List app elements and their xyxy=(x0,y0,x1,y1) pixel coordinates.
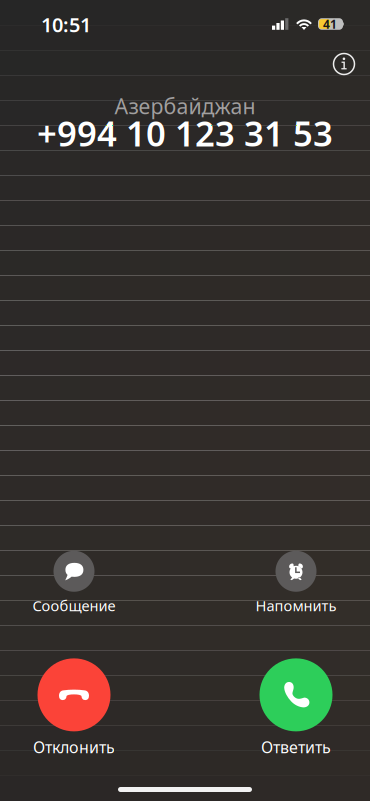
staticText: Напомнить xyxy=(255,596,336,615)
staticText: Азербайджан xyxy=(114,92,255,120)
staticText: Отклонить xyxy=(33,736,115,758)
button[interactable]: Отклонить xyxy=(0,658,148,758)
staticText: 41 xyxy=(323,16,337,32)
button[interactable]: Send message xyxy=(0,551,148,615)
staticText: Ответить xyxy=(261,736,331,758)
button[interactable]: Ответить xyxy=(222,658,370,758)
button[interactable]: Remind me xyxy=(222,551,370,615)
button[interactable]: Call info xyxy=(327,47,361,81)
staticText: +994 10 123 31 53 xyxy=(37,110,333,156)
staticText: Сообщение xyxy=(32,596,115,615)
staticText: 10:51 xyxy=(41,11,91,38)
